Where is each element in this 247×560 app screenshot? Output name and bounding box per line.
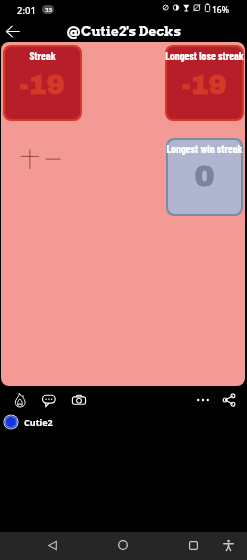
button[interactable]: Back bbox=[0, 20, 24, 42]
button[interactable]: Share bbox=[221, 392, 237, 408]
button[interactable]: Comments bbox=[41, 392, 57, 408]
button[interactable]: Accessibility bbox=[216, 533, 240, 557]
staticText: @Cutie2's Decks bbox=[66, 23, 181, 39]
button[interactable]: Home bbox=[111, 533, 135, 557]
staticText: Cutie2 bbox=[24, 416, 53, 428]
staticText: 0 bbox=[194, 160, 215, 193]
button[interactable] bbox=[5, 47, 80, 119]
button[interactable] bbox=[167, 47, 242, 119]
button[interactable]: Cutie2 bbox=[3, 412, 67, 431]
button[interactable] bbox=[168, 140, 241, 214]
staticText: Streak bbox=[29, 49, 56, 62]
button[interactable]: Recent apps bbox=[181, 533, 205, 557]
staticText: -19 bbox=[181, 70, 227, 99]
button[interactable]: Fire bbox=[12, 392, 28, 408]
button[interactable]: More options bbox=[195, 392, 211, 408]
staticText: 33 bbox=[45, 6, 52, 14]
staticText: -19 bbox=[19, 70, 65, 99]
staticText: 16% bbox=[212, 4, 229, 16]
staticText: Longest win streak bbox=[166, 142, 243, 155]
staticText: 2:01 bbox=[17, 4, 36, 17]
button[interactable]: Back bbox=[40, 533, 64, 557]
button[interactable]: Camera bbox=[71, 392, 87, 408]
staticText: Longest lose streak bbox=[165, 49, 244, 62]
